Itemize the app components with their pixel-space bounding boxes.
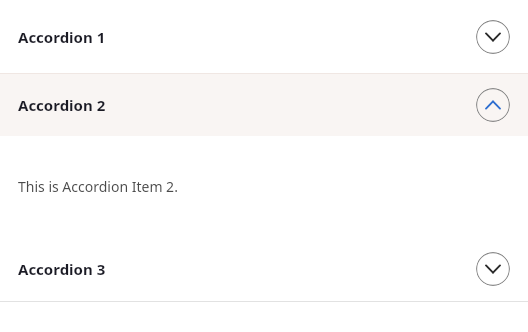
staticText: Accordion 1 (18, 27, 106, 47)
staticText: Accordion 2 (18, 95, 106, 115)
button[interactable]: Collapse Accordion 2 (476, 88, 510, 122)
button[interactable]: Accordion 3 (0, 236, 528, 301)
button[interactable]: Expand Accordion 3 (476, 252, 510, 286)
button[interactable]: Accordion 1 (0, 0, 528, 73)
staticText: This is Accordion Item 2. (18, 177, 178, 196)
staticText: Accordion 3 (18, 259, 106, 279)
button[interactable]: Expand Accordion 1 (476, 20, 510, 54)
button[interactable]: Accordion 2 (0, 74, 528, 136)
